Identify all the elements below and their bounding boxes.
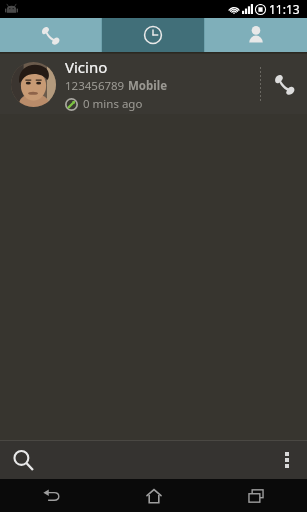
button[interactable]: Call Vicino	[261, 54, 307, 114]
button[interactable]: Dialer	[0, 18, 101, 52]
staticText: 11:13	[269, 1, 300, 17]
button[interactable]: Back	[0, 479, 103, 512]
button[interactable]: Search	[0, 441, 46, 479]
button[interactable]: More options	[267, 441, 307, 479]
staticText: 123456789	[65, 78, 128, 94]
staticText: 0 mins ago	[83, 96, 143, 112]
staticText: Vicino	[65, 57, 108, 77]
button[interactable]: Recent apps	[205, 479, 307, 512]
button[interactable]: Vicino	[0, 54, 260, 114]
button[interactable]: Contacts	[205, 18, 307, 52]
button[interactable]: Home	[103, 479, 205, 512]
button[interactable]: Call history	[102, 18, 204, 52]
staticText: Mobile	[128, 78, 168, 94]
